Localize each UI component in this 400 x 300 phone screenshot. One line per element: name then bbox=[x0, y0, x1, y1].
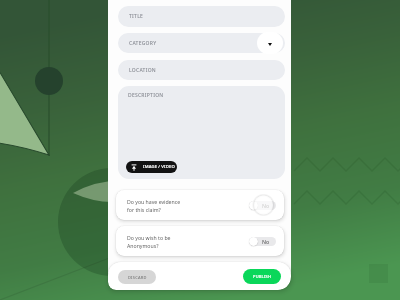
staticText: DESCRIPTION bbox=[128, 92, 164, 99]
button[interactable]: Toggle No bbox=[249, 237, 276, 246]
button[interactable]: TITLE bbox=[118, 6, 285, 27]
staticText: TITLE bbox=[129, 13, 144, 20]
staticText: Do you wish to be bbox=[127, 234, 171, 241]
button[interactable]: DISCARD bbox=[118, 270, 156, 284]
button[interactable]: LOCATION bbox=[118, 60, 285, 80]
staticText: LOCATION bbox=[129, 67, 156, 74]
staticText: Do you have evidence bbox=[127, 198, 181, 205]
button[interactable]: CATEGORY bbox=[118, 33, 285, 53]
staticText: DISCARD bbox=[128, 275, 147, 280]
button[interactable]: PUBLISH bbox=[243, 269, 281, 284]
button[interactable]: Do you have evidence bbox=[116, 190, 284, 220]
staticText: for this claim? bbox=[127, 206, 161, 213]
button[interactable]: Toggle No bbox=[249, 201, 276, 210]
button[interactable]: Do you wish to be bbox=[116, 226, 284, 256]
staticText: No bbox=[262, 238, 270, 245]
button[interactable]: DESCRIPTION bbox=[118, 86, 285, 179]
staticText: IMAGE / VIDEO bbox=[143, 164, 175, 170]
button[interactable]: IMAGE / VIDEO bbox=[126, 161, 177, 173]
button[interactable]: Open category dropdown bbox=[257, 32, 283, 54]
staticText: No bbox=[262, 202, 270, 209]
staticText: CATEGORY bbox=[129, 40, 157, 47]
staticText: Anonymous? bbox=[127, 242, 159, 249]
staticText: PUBLISH bbox=[253, 274, 272, 279]
